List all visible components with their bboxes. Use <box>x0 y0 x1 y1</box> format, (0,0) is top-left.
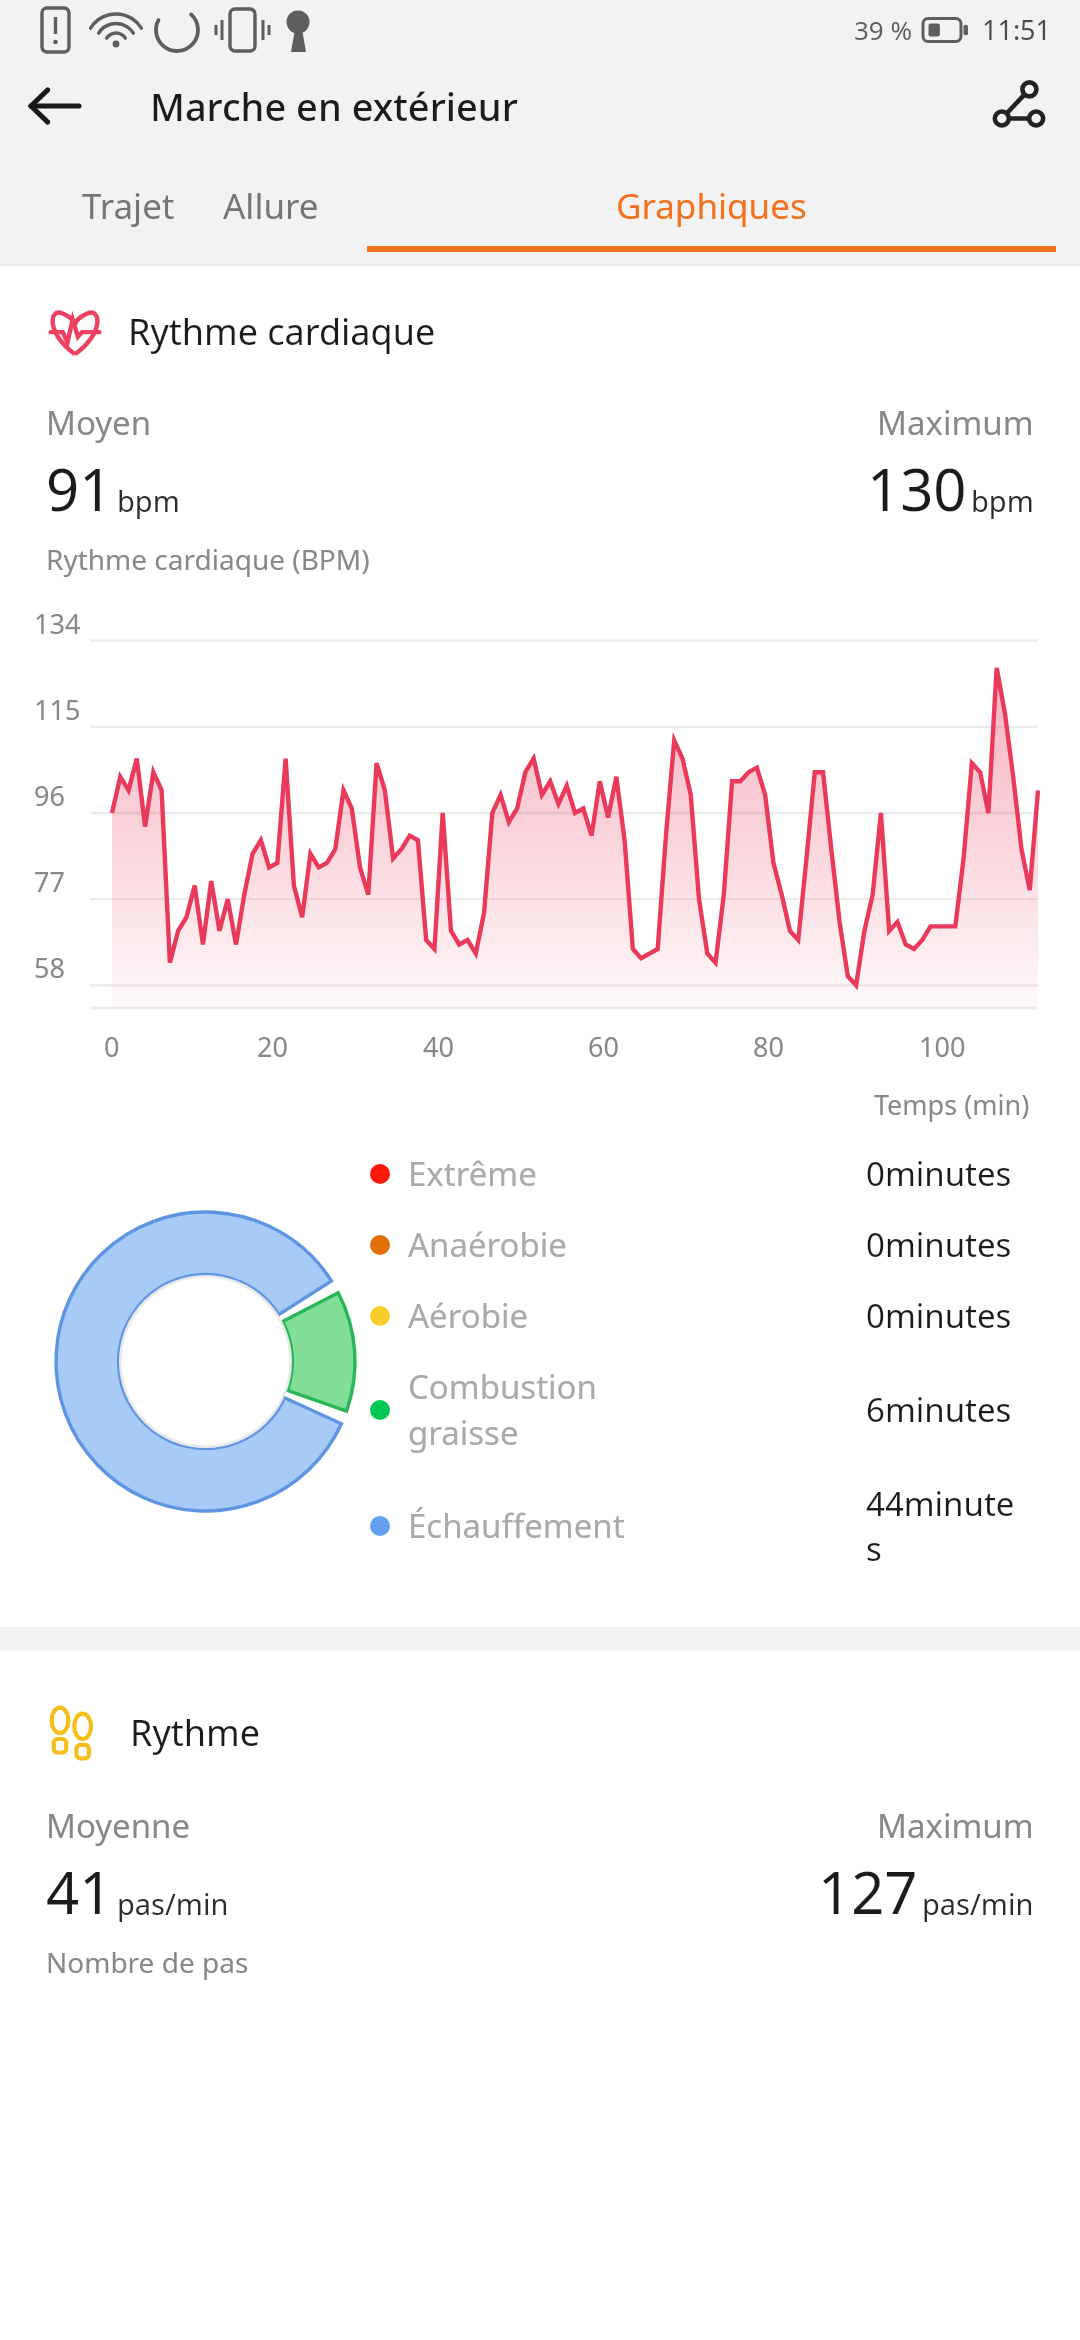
staticText: pas/min <box>922 1884 1034 1923</box>
staticText: Rythme cardiaque <box>128 307 436 356</box>
staticText: Nombre de pas <box>46 1943 249 1981</box>
button[interactable]: Share <box>982 69 1056 143</box>
staticText: 40 <box>423 1028 454 1065</box>
staticText: Échauffement <box>408 1503 866 1548</box>
staticText: Marche en extérieur <box>150 80 518 132</box>
staticText: Rythme cardiaque (BPM) <box>46 540 370 578</box>
staticText: 96 <box>34 777 65 814</box>
staticText: Moyenne <box>46 1803 191 1848</box>
staticText: Aérobie <box>408 1293 866 1338</box>
staticText: 100 <box>919 1028 966 1065</box>
staticText: 0minutes <box>866 1293 1036 1338</box>
staticText: 6minutes <box>866 1387 1036 1432</box>
staticText: Combustion graisse <box>408 1364 866 1455</box>
staticText: Moyen <box>46 400 152 445</box>
staticText: Rythme <box>130 1708 260 1757</box>
staticText: bpm <box>117 481 180 520</box>
staticText: 11:51 <box>982 11 1052 48</box>
staticText: Extrême <box>408 1151 866 1196</box>
staticText: 91 <box>46 449 113 528</box>
button[interactable]: Graphiques <box>343 154 1080 252</box>
staticText: 80 <box>753 1028 784 1065</box>
staticText: 77 <box>34 863 65 900</box>
staticText: 0minutes <box>866 1222 1036 1267</box>
staticText: 127 <box>818 1852 918 1931</box>
staticText: Trajet <box>82 182 175 230</box>
staticText: Maximum <box>877 400 1034 445</box>
staticText: 115 <box>34 691 81 728</box>
staticText: 39 % <box>854 12 913 47</box>
staticText: 0minutes <box>866 1151 1036 1196</box>
staticText: 0 <box>104 1028 120 1065</box>
staticText: 130 <box>867 449 967 528</box>
staticText: 20 <box>257 1028 288 1065</box>
staticText: pas/min <box>117 1884 229 1923</box>
button[interactable]: Trajet <box>58 154 199 246</box>
staticText: Graphiques <box>616 182 807 230</box>
staticText: 58 <box>34 949 65 986</box>
staticText: 41 <box>46 1852 113 1931</box>
button[interactable]: Allure <box>199 154 343 246</box>
staticText: Anaérobie <box>408 1222 866 1267</box>
staticText: 134 <box>34 605 81 642</box>
staticText: 44minute s <box>866 1481 1036 1570</box>
button[interactable]: Back <box>22 73 88 139</box>
staticText: Maximum <box>877 1803 1034 1848</box>
staticText: Allure <box>223 182 319 230</box>
staticText: bpm <box>971 481 1034 520</box>
staticText: 60 <box>588 1028 619 1065</box>
staticText: Temps (min) <box>874 1086 1030 1123</box>
